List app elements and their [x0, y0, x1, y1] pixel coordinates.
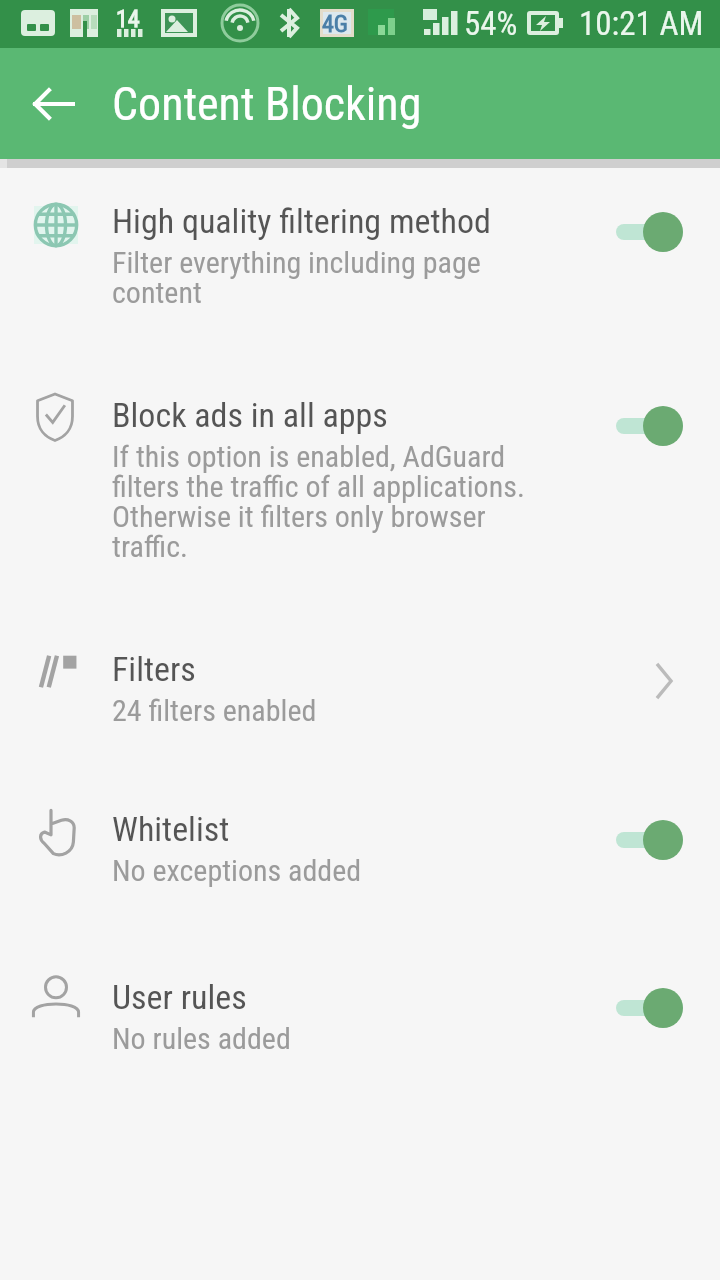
- staticText: Block ads in all apps: [112, 395, 388, 435]
- staticText: 54%: [464, 4, 518, 43]
- button[interactable]: Open Filters: [628, 653, 700, 709]
- staticText: Content Blocking: [112, 77, 422, 131]
- button[interactable]: Filters: [0, 649, 720, 759]
- button[interactable]: Block ads in all apps: [0, 395, 720, 565]
- staticText: 14: [116, 5, 140, 33]
- staticText: No rules added: [112, 1021, 291, 1056]
- button[interactable]: Toggle user rules: [616, 978, 720, 1038]
- staticText: User rules: [112, 977, 247, 1017]
- button[interactable]: High quality filtering method: [0, 201, 720, 311]
- button[interactable]: Toggle whitelist: [616, 810, 720, 870]
- staticText: 4G: [322, 10, 349, 38]
- button[interactable]: Toggle high quality filtering method: [616, 202, 720, 262]
- button[interactable]: Whitelist: [0, 809, 720, 919]
- staticText: No exceptions added: [112, 853, 362, 888]
- staticText: 10:21 AM: [579, 4, 704, 43]
- staticText: If this option is enabled, AdGuard filte…: [112, 439, 525, 564]
- button[interactable]: Back: [25, 75, 83, 133]
- staticText: Whitelist: [112, 809, 230, 849]
- staticText: 24 filters enabled: [112, 693, 317, 728]
- staticText: Filters: [112, 649, 196, 689]
- staticText: Filter everything including page content: [112, 245, 481, 310]
- staticText: High quality filtering method: [112, 201, 491, 241]
- button[interactable]: User rules: [0, 977, 720, 1087]
- button[interactable]: Toggle block ads in all apps: [616, 396, 720, 456]
